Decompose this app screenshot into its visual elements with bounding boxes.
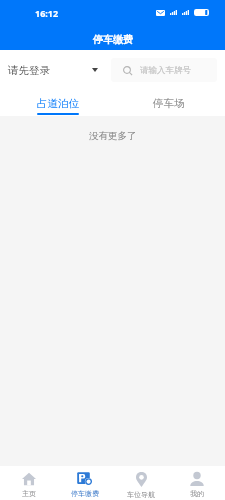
staticText: 停车场 <box>153 97 185 110</box>
button[interactable]: 占道泊位 <box>20 94 96 116</box>
staticText: 请输入车牌号 <box>140 65 191 76</box>
staticText: 我的 <box>190 489 204 498</box>
button[interactable]: 请输入车牌号 <box>111 58 217 82</box>
button[interactable]: 车位导航 <box>113 466 169 500</box>
staticText: 没有更多了 <box>89 130 137 142</box>
staticText: 占道泊位 <box>37 97 79 110</box>
staticText: 主页 <box>22 489 36 498</box>
button[interactable]: 停车场 <box>131 94 207 116</box>
staticText: 请先登录 <box>8 64 50 77</box>
button[interactable]: 我的 <box>169 466 225 500</box>
staticText: 16:12 <box>35 7 59 19</box>
staticText: 停车缴费 <box>71 489 99 498</box>
staticText: 停车缴费 <box>93 33 133 46</box>
staticText: 车位导航 <box>127 490 155 499</box>
button[interactable]: 请先登录 <box>4 58 102 82</box>
button[interactable]: 停车缴费 <box>57 466 113 500</box>
button[interactable]: 主页 <box>0 466 57 500</box>
